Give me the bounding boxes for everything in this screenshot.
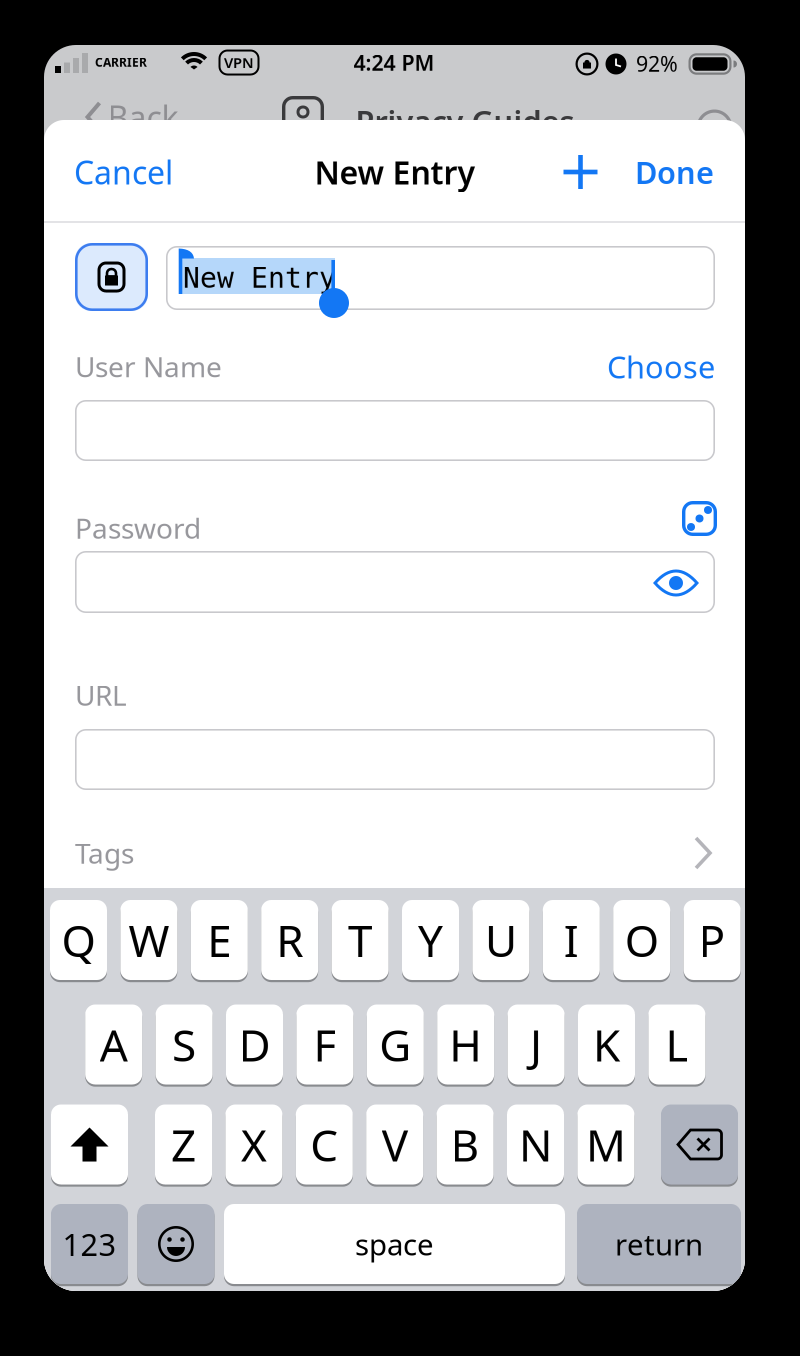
- button[interactable]: space: [224, 1204, 565, 1284]
- staticText: URL: [75, 676, 127, 714]
- staticText: S: [172, 1015, 196, 1074]
- button[interactable]: T: [332, 900, 389, 980]
- staticText: J: [530, 1015, 542, 1074]
- button[interactable]: O: [613, 900, 670, 980]
- button[interactable]: Z: [155, 1104, 212, 1184]
- staticText: V: [382, 1115, 408, 1174]
- button[interactable]: W: [120, 900, 177, 980]
- staticText: W: [128, 911, 169, 969]
- staticText: 4:24 PM: [353, 48, 434, 77]
- staticText: T: [348, 911, 372, 969]
- staticText: space: [355, 1224, 434, 1263]
- button[interactable]: H: [437, 1004, 494, 1084]
- staticText: 123: [62, 1224, 116, 1264]
- button[interactable]: [44, 45, 745, 1291]
- button[interactable]: B: [437, 1104, 494, 1184]
- button[interactable]: R: [261, 900, 318, 980]
- button[interactable]: L: [648, 1004, 705, 1084]
- button[interactable]: I: [543, 900, 600, 980]
- staticText: CARRIER: [95, 54, 147, 70]
- staticText: Done: [635, 152, 714, 192]
- staticText: X: [241, 1115, 267, 1174]
- staticText: P: [699, 911, 726, 969]
- button[interactable]: F: [296, 1004, 353, 1084]
- staticText: New Entry: [183, 262, 336, 294]
- button[interactable]: Done: [514, 152, 714, 192]
- staticText: U: [485, 911, 517, 969]
- button[interactable]: return: [577, 1204, 741, 1284]
- staticText: 92%: [636, 49, 678, 78]
- button[interactable]: U: [472, 900, 529, 980]
- button[interactable]: [44, 45, 745, 1291]
- staticText: L: [665, 1015, 688, 1074]
- button[interactable]: K: [578, 1004, 635, 1084]
- staticText: O: [625, 911, 659, 969]
- button[interactable]: Back: [85, 96, 178, 138]
- button[interactable]: Entry icon: [75, 243, 148, 311]
- staticText: N: [519, 1115, 552, 1174]
- staticText: Password: [75, 509, 201, 547]
- staticText: K: [593, 1015, 620, 1074]
- button[interactable]: J: [508, 1004, 565, 1084]
- button[interactable]: Delete: [661, 1104, 738, 1184]
- button[interactable]: Add: [563, 155, 597, 189]
- staticText: E: [207, 911, 231, 969]
- button[interactable]: A: [85, 1004, 142, 1084]
- button[interactable]: Generate password: [682, 501, 717, 536]
- staticText: H: [449, 1015, 482, 1074]
- staticText: C: [310, 1115, 338, 1174]
- button[interactable]: Shift: [51, 1104, 128, 1184]
- button[interactable]: Q: [50, 900, 107, 980]
- button[interactable]: M: [577, 1104, 634, 1184]
- staticText: Z: [171, 1115, 196, 1174]
- staticText: R: [276, 911, 303, 969]
- staticText: B: [451, 1115, 480, 1174]
- button[interactable]: G: [367, 1004, 424, 1084]
- button[interactable]: [44, 45, 745, 1291]
- button[interactable]: E: [191, 900, 248, 980]
- button[interactable]: S: [156, 1004, 213, 1084]
- button[interactable]: Show password: [654, 570, 698, 596]
- staticText: M: [586, 1115, 626, 1174]
- staticText: D: [238, 1015, 270, 1074]
- button[interactable]: V: [366, 1104, 423, 1184]
- button[interactable]: Tags: [44, 819, 745, 887]
- button[interactable]: Choose: [515, 346, 715, 387]
- button[interactable]: [44, 45, 745, 1291]
- staticText: F: [313, 1015, 336, 1074]
- staticText: Choose: [607, 346, 715, 387]
- button[interactable]: Y: [402, 900, 459, 980]
- staticText: VPN: [224, 53, 254, 72]
- button[interactable]: Cancel: [74, 151, 274, 193]
- staticText: return: [615, 1224, 703, 1263]
- staticText: A: [100, 1015, 128, 1074]
- staticText: User Name: [75, 348, 222, 385]
- staticText: Q: [61, 911, 95, 969]
- staticText: G: [379, 1015, 411, 1074]
- staticText: Cancel: [74, 151, 173, 193]
- button[interactable]: D: [226, 1004, 283, 1084]
- button[interactable]: 123: [51, 1204, 128, 1284]
- staticText: Y: [418, 911, 443, 969]
- staticText: I: [564, 911, 579, 969]
- button[interactable]: C: [296, 1104, 353, 1184]
- button[interactable]: Emoji: [137, 1204, 214, 1284]
- button[interactable]: X: [225, 1104, 282, 1184]
- staticText: Tags: [75, 834, 134, 872]
- button[interactable]: P: [684, 900, 741, 980]
- staticText: New Entry: [314, 151, 475, 193]
- button[interactable]: Search: [696, 109, 732, 145]
- button[interactable]: N: [507, 1104, 564, 1184]
- staticText: Privacy Guides: [355, 101, 574, 141]
- staticText: Back: [107, 96, 178, 138]
